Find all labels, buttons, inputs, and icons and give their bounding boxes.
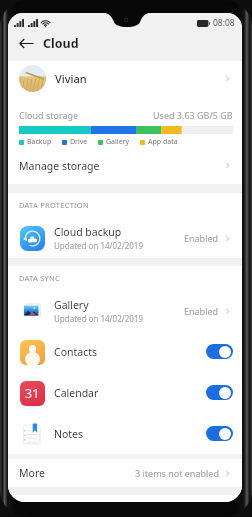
staticText: Gallery: [54, 298, 89, 312]
button[interactable]: Toggle: [206, 426, 233, 441]
button[interactable]: Manage storage: [8, 147, 242, 184]
staticText: Calendar: [54, 386, 99, 400]
staticText: More: [19, 466, 45, 480]
staticText: Enabled: [184, 305, 219, 317]
button[interactable]: Cloud backup: [8, 217, 242, 258]
staticText: Contacts: [54, 345, 98, 359]
staticText: DATA PROTECTION: [19, 200, 89, 210]
button[interactable]: 31: [8, 372, 242, 413]
staticText: Cloud backup: [54, 225, 122, 239]
staticText: Cloud: [43, 35, 79, 52]
staticText: Gallery: [106, 137, 130, 147]
staticText: Enabled: [184, 232, 219, 244]
staticText: Backup: [27, 137, 52, 147]
button[interactable]: Toggle: [206, 385, 233, 400]
button[interactable]: Contacts: [8, 331, 242, 372]
staticText: Vivian: [55, 71, 87, 86]
staticText: Updated on 14/02/2019: [54, 240, 143, 251]
staticText: 08:08: [213, 17, 235, 29]
button[interactable]: Notes: [8, 413, 242, 454]
staticText: Cloud storage: [19, 109, 79, 121]
button[interactable]: Toggle: [206, 344, 233, 359]
staticText: Notes: [54, 427, 84, 441]
button[interactable]: Back: [16, 33, 37, 54]
staticText: 31: [25, 385, 40, 402]
staticText: 3 items not enabled: [135, 467, 219, 479]
staticText: Drive: [70, 137, 88, 147]
button[interactable]: More: [8, 459, 242, 487]
button[interactable]: Gallery: [8, 290, 242, 331]
staticText: App data: [148, 137, 178, 147]
button[interactable]: Vivian: [8, 61, 242, 96]
staticText: DATA SYNC: [19, 273, 61, 283]
staticText: Updated on 14/02/2019: [54, 313, 143, 324]
staticText: Manage storage: [19, 159, 100, 173]
staticText: Used 3.63 GB/5 GB: [153, 109, 233, 121]
